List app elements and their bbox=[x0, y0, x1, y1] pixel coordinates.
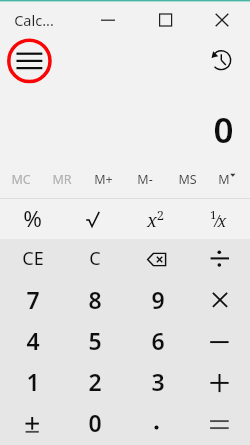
button[interactable]: 0 bbox=[62, 404, 124, 445]
button[interactable]: % bbox=[0, 199, 62, 239]
staticText: 1⁄x bbox=[210, 207, 227, 232]
button[interactable]: Divide bbox=[187, 239, 250, 281]
button[interactable]: C bbox=[62, 239, 124, 281]
staticText: 7 bbox=[26, 284, 40, 315]
staticText: M+ bbox=[94, 171, 113, 188]
button[interactable]: Multiply bbox=[187, 281, 250, 322]
button[interactable]: Plus minus bbox=[0, 404, 62, 445]
staticText: M- bbox=[137, 171, 153, 188]
staticText: Calc... bbox=[14, 10, 54, 30]
staticText: 0 bbox=[213, 106, 234, 154]
button[interactable]: 8 bbox=[62, 281, 124, 322]
button[interactable]: Plus bbox=[187, 363, 250, 404]
button[interactable]: 6 bbox=[124, 322, 187, 363]
button[interactable]: M+ bbox=[82, 160, 124, 198]
staticText: 2 bbox=[88, 366, 102, 397]
staticText: MR bbox=[52, 171, 72, 188]
staticText: MS bbox=[178, 171, 197, 188]
button[interactable]: MR bbox=[41, 160, 82, 198]
button[interactable]: CE bbox=[0, 239, 62, 281]
staticText: MC bbox=[11, 171, 31, 188]
button[interactable]: Backspace bbox=[124, 239, 187, 281]
button[interactable]: MC bbox=[0, 160, 41, 198]
button[interactable]: 7 bbox=[0, 281, 62, 322]
staticText: C bbox=[89, 246, 101, 271]
staticText: 3 bbox=[151, 366, 165, 397]
button[interactable]: 9 bbox=[124, 281, 187, 322]
staticText: 6 bbox=[151, 325, 165, 356]
button[interactable]: M bbox=[208, 160, 250, 198]
staticText: 4 bbox=[26, 325, 40, 356]
button[interactable]: Minimize bbox=[79, 2, 136, 38]
button[interactable]: Menu bbox=[9, 41, 50, 82]
button[interactable]: Close bbox=[193, 2, 250, 38]
button[interactable]: 1 bbox=[0, 363, 62, 404]
button[interactable]: 4 bbox=[0, 322, 62, 363]
staticText: M bbox=[218, 171, 230, 188]
staticText: 8 bbox=[88, 284, 102, 315]
button[interactable]: Squared bbox=[124, 199, 187, 239]
button[interactable]: Reciprocal bbox=[187, 199, 250, 239]
staticText: x2 bbox=[147, 206, 165, 232]
staticText: 9 bbox=[151, 284, 165, 315]
button[interactable]: 3 bbox=[124, 363, 187, 404]
button[interactable]: Minus bbox=[187, 322, 250, 363]
button[interactable]: Equals bbox=[187, 404, 250, 445]
staticText: 0 bbox=[88, 407, 102, 438]
button[interactable]: Square root bbox=[62, 199, 124, 239]
staticText: 5 bbox=[88, 325, 102, 356]
staticText: 1 bbox=[26, 366, 40, 397]
button[interactable]: Maximize bbox=[136, 2, 193, 38]
button[interactable]: MS bbox=[166, 160, 208, 198]
staticText: % bbox=[23, 203, 42, 234]
button[interactable]: 2 bbox=[62, 363, 124, 404]
button[interactable]: 5 bbox=[62, 322, 124, 363]
button[interactable]: History bbox=[205, 44, 238, 77]
button[interactable]: Decimal point bbox=[124, 404, 187, 445]
button[interactable]: M- bbox=[124, 160, 166, 198]
staticText: CE bbox=[22, 246, 44, 271]
